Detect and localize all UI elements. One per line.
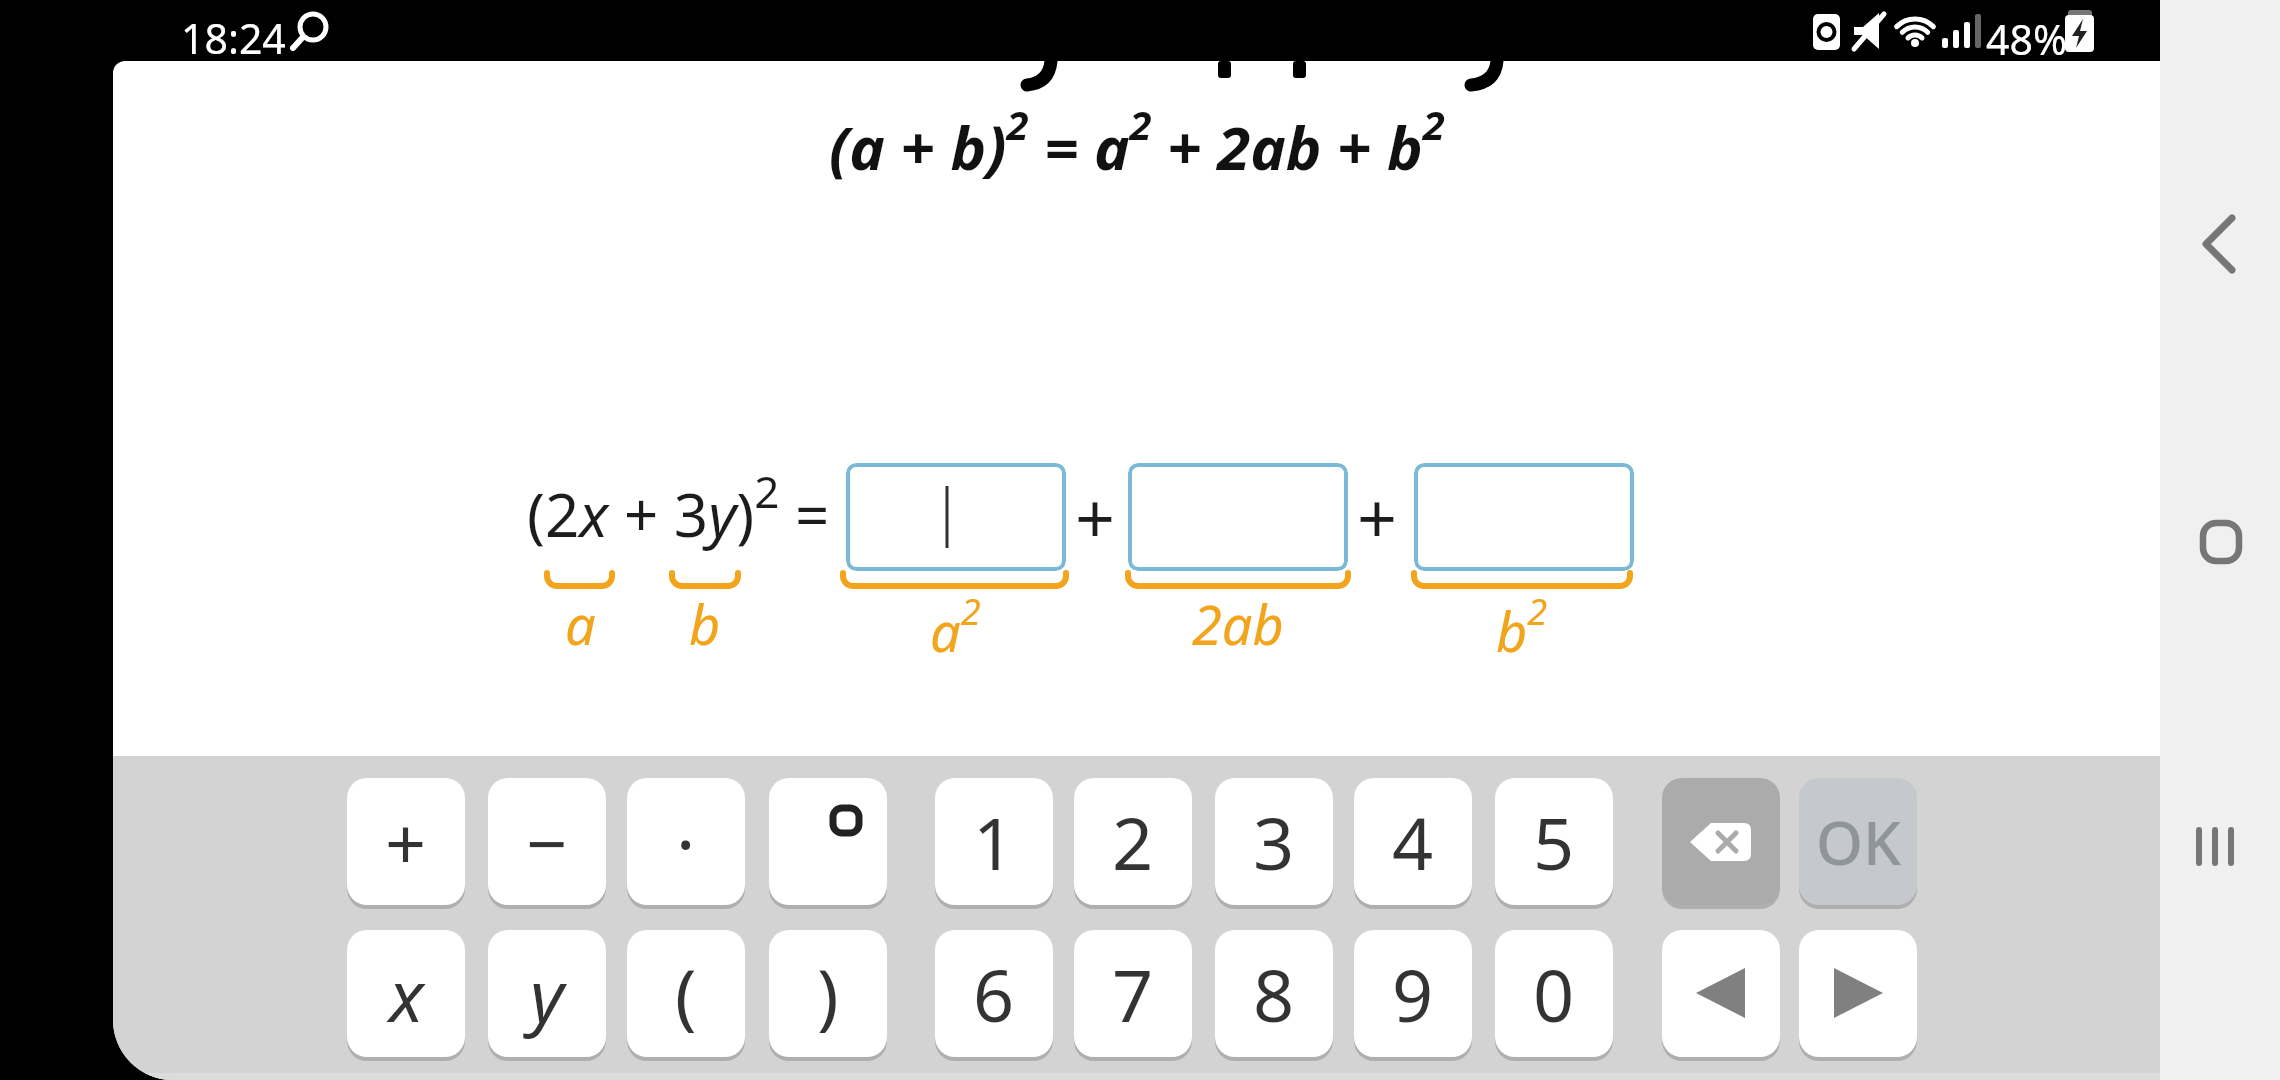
button[interactable]: [1128, 463, 1348, 571]
button[interactable]: +: [347, 778, 465, 905]
staticText: OK: [1816, 801, 1901, 883]
staticText: 1: [973, 793, 1015, 891]
button[interactable]: 0: [1495, 930, 1613, 1057]
staticText: 4: [1392, 793, 1434, 891]
staticText: a2: [930, 587, 981, 668]
button[interactable]: ): [769, 930, 887, 1057]
button[interactable]: 1: [935, 778, 1053, 905]
button[interactable]: [846, 463, 1066, 571]
button[interactable]: x: [347, 930, 465, 1057]
button[interactable]: [1662, 930, 1780, 1057]
button[interactable]: 3: [1215, 778, 1333, 905]
staticText: 3: [1253, 793, 1295, 891]
button[interactable]: [1662, 778, 1780, 905]
staticText: +: [1075, 469, 1116, 564]
button[interactable]: 9: [1354, 930, 1472, 1057]
staticText: (a + b)2 = a2 + 2ab + b2: [829, 97, 1445, 187]
button[interactable]: −: [488, 778, 606, 905]
button[interactable]: [769, 778, 887, 905]
staticText: +: [1357, 469, 1398, 564]
staticText: 5: [1533, 793, 1575, 891]
button[interactable]: OK: [1799, 778, 1917, 905]
button[interactable]: 4: [1354, 778, 1472, 905]
button[interactable]: (: [627, 930, 745, 1057]
staticText: 2: [1112, 793, 1154, 891]
staticText: 8: [1253, 945, 1295, 1043]
button[interactable]: y: [488, 930, 606, 1057]
staticText: 7: [1112, 945, 1154, 1043]
staticText: 48%: [1986, 11, 2067, 67]
button[interactable]: 7: [1074, 930, 1192, 1057]
staticText: 6: [973, 945, 1015, 1043]
button[interactable]: 8: [1215, 930, 1333, 1057]
staticText: b: [689, 587, 721, 661]
staticText: b2: [1496, 587, 1548, 668]
staticText: ·: [676, 793, 696, 891]
button[interactable]: [1414, 463, 1634, 571]
staticText: −: [526, 793, 568, 891]
button[interactable]: [2180, 502, 2260, 582]
button[interactable]: [1799, 930, 1917, 1057]
staticText: (2x + 3y)2 =: [527, 461, 830, 555]
staticText: +: [385, 793, 427, 891]
staticText: 9: [1392, 945, 1434, 1043]
button[interactable]: 2: [1074, 778, 1192, 905]
button[interactable]: 5: [1495, 778, 1613, 905]
staticText: a: [565, 587, 596, 661]
staticText: x: [389, 945, 424, 1043]
staticText: 0: [1533, 945, 1575, 1043]
button[interactable]: [2180, 806, 2260, 886]
staticText: 2ab: [1192, 587, 1284, 661]
staticText: ): [817, 945, 839, 1043]
staticText: y: [530, 945, 564, 1043]
staticText: (: [675, 945, 697, 1043]
button[interactable]: ·: [627, 778, 745, 905]
button[interactable]: [2180, 204, 2260, 284]
button[interactable]: 6: [935, 930, 1053, 1057]
staticText: 18:24: [181, 10, 286, 66]
